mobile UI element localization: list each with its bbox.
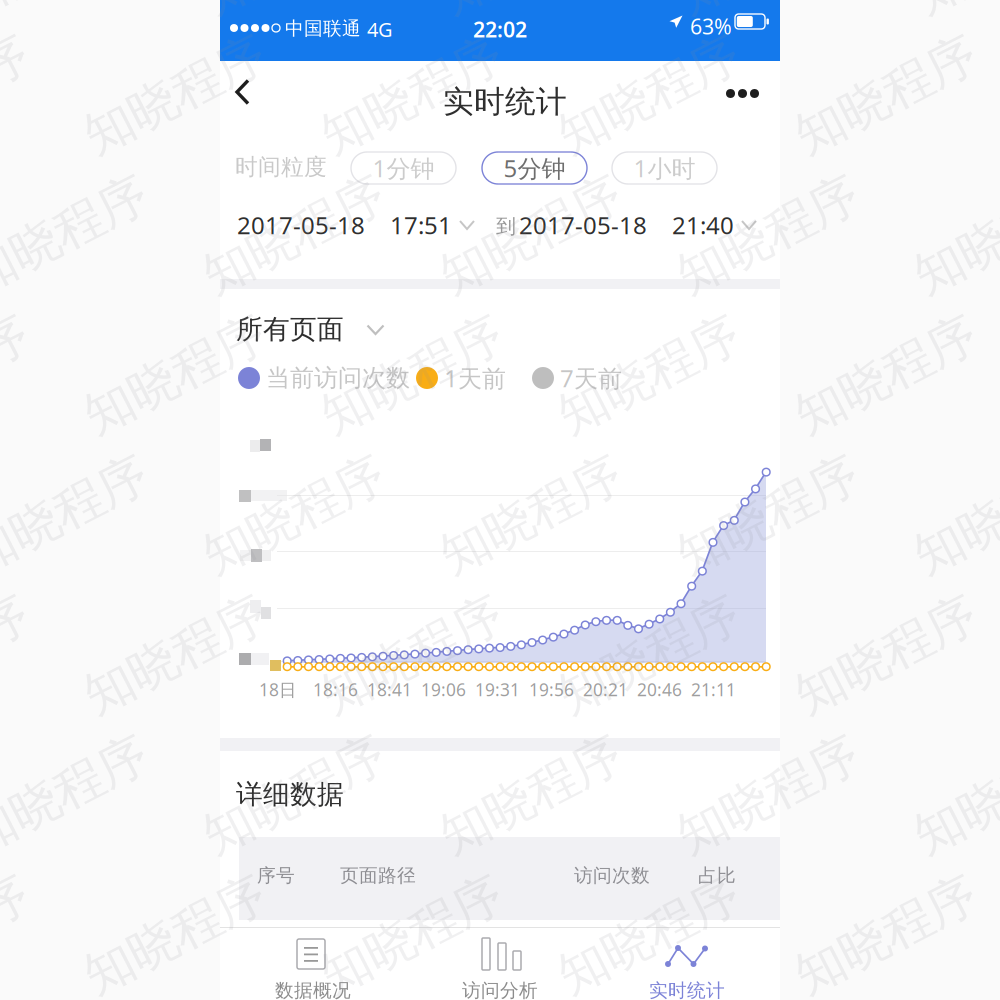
staticText: 访问分析: [462, 979, 538, 1000]
staticText: 知晓程序: [196, 765, 392, 825]
staticText: 知晓程序: [0, 765, 155, 825]
staticText: 知晓程序: [788, 65, 984, 125]
staticText: 数据概况: [275, 979, 351, 1000]
button[interactable]: Back: [222, 69, 270, 119]
staticText: 占比: [698, 864, 736, 887]
staticText: 21:40: [672, 209, 734, 241]
button[interactable]: 所有页面: [236, 312, 386, 348]
staticText: 知晓程序: [314, 625, 510, 685]
staticText: 页面路径: [340, 864, 416, 887]
staticText: 知晓程序: [314, 345, 510, 405]
button[interactable]: 2017-05-18: [519, 205, 762, 243]
staticText: 19:56: [529, 678, 574, 701]
staticText: 序号: [257, 864, 295, 887]
staticText: 知晓程序: [907, 205, 1000, 265]
staticText: 知晓程序: [314, 905, 510, 965]
staticText: 18:16: [313, 678, 358, 701]
staticText: 知晓程序: [670, 205, 866, 265]
staticText: 时间粒度: [235, 153, 327, 181]
staticText: 4G: [367, 16, 393, 43]
staticText: 知晓程序: [77, 625, 273, 685]
staticText: 20:21: [583, 678, 628, 701]
staticText: 17:51: [390, 209, 452, 241]
staticText: 知晓程序: [551, 345, 747, 405]
staticText: 知晓程序: [433, 485, 629, 545]
staticText: 知晓程序: [788, 905, 984, 965]
staticText: 知晓程序: [77, 905, 273, 965]
staticText: 18:41: [367, 678, 412, 701]
staticText: 知晓程序: [788, 625, 984, 685]
staticText: 知晓程序: [196, 485, 392, 545]
staticText: 18日: [259, 678, 296, 701]
button[interactable]: 2017-05-18: [237, 205, 480, 243]
button[interactable]: 实时统计: [594, 928, 780, 1000]
staticText: 知晓程序: [907, 485, 1000, 545]
staticText: 到: [496, 214, 516, 239]
staticText: 中国联通: [285, 17, 361, 40]
staticText: 21:11: [691, 678, 736, 701]
staticText: 知晓程序: [670, 765, 866, 825]
staticText: 当前访问次数: [266, 363, 410, 393]
staticText: 1分钟: [372, 152, 434, 184]
staticText: 实时统计: [443, 83, 567, 121]
staticText: 知晓程序: [907, 765, 1000, 825]
button[interactable]: 1分钟: [351, 152, 456, 184]
staticText: 5分钟: [503, 152, 565, 184]
staticText: 20:46: [637, 678, 682, 701]
staticText: 知晓程序: [670, 485, 866, 545]
staticText: 7天前: [560, 362, 622, 394]
staticText: 知晓程序: [0, 485, 155, 545]
button[interactable]: More: [716, 69, 774, 119]
staticText: 63%: [690, 12, 732, 40]
staticText: 1天前: [444, 362, 506, 394]
staticText: 知晓程序: [788, 345, 984, 405]
staticText: 知晓程序: [196, 205, 392, 265]
staticText: 19:06: [421, 678, 466, 701]
staticText: 所有页面: [236, 313, 344, 346]
staticText: 知晓程序: [433, 765, 629, 825]
button[interactable]: 1小时: [612, 152, 717, 184]
staticText: 知晓程序: [551, 65, 747, 125]
staticText: 1小时: [633, 152, 695, 184]
staticText: 知晓程序: [433, 205, 629, 265]
button[interactable]: 访问分析: [407, 928, 593, 1000]
staticText: 知晓程序: [314, 65, 510, 125]
staticText: 访问次数: [574, 864, 650, 887]
button[interactable]: 5分钟: [482, 152, 587, 184]
button[interactable]: 数据概况: [220, 928, 406, 1000]
staticText: 知晓程序: [551, 625, 747, 685]
staticText: 19:31: [475, 678, 520, 701]
staticText: 2017-05-18: [519, 209, 647, 241]
staticText: 实时统计: [649, 979, 725, 1000]
staticText: 知晓程序: [77, 65, 273, 125]
staticText: 详细数据: [236, 778, 344, 811]
staticText: 知晓程序: [551, 905, 747, 965]
staticText: 22:02: [473, 15, 527, 43]
staticText: 知晓程序: [77, 345, 273, 405]
staticText: 2017-05-18: [237, 209, 365, 241]
staticText: 知晓程序: [0, 205, 155, 265]
